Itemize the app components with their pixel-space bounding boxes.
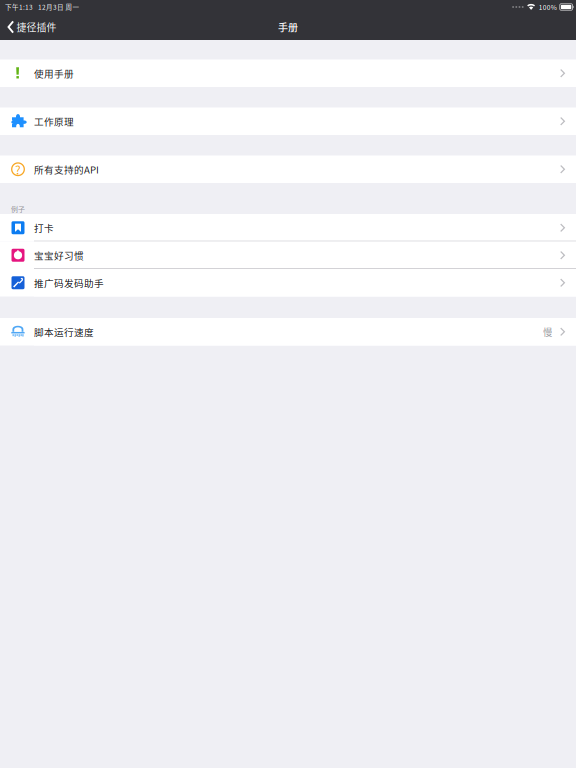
- staticText: 推广码发码助手: [34, 276, 104, 290]
- button[interactable]: 捷径插件: [0, 14, 63, 40]
- staticText: 慢: [543, 325, 552, 338]
- button[interactable]: 工作原理: [0, 107, 576, 135]
- staticText: 12月3日: [38, 2, 64, 12]
- staticText: 例子: [11, 204, 25, 214]
- staticText: 宝宝好习惯: [34, 248, 84, 262]
- staticText: 手册: [278, 20, 298, 34]
- staticText: 周一: [65, 2, 79, 12]
- staticText: 工作原理: [34, 114, 74, 128]
- staticText: 打卡: [34, 221, 54, 235]
- button[interactable]: 打卡: [0, 214, 576, 241]
- staticText: 所有支持的API: [34, 162, 99, 176]
- staticText: 捷径插件: [17, 20, 57, 34]
- button[interactable]: 脚本运行速度: [0, 318, 576, 345]
- staticText: 100%: [539, 2, 557, 12]
- staticText: 下午1:13: [5, 2, 33, 12]
- button[interactable]: 推广码发码助手: [0, 269, 576, 296]
- button[interactable]: ?: [0, 155, 576, 183]
- button[interactable]: 宝宝好习惯: [0, 241, 576, 269]
- staticText: ?: [15, 161, 21, 178]
- staticText: 使用手册: [34, 66, 74, 80]
- staticText: 脚本运行速度: [34, 325, 94, 339]
- button[interactable]: 使用手册: [0, 59, 576, 87]
